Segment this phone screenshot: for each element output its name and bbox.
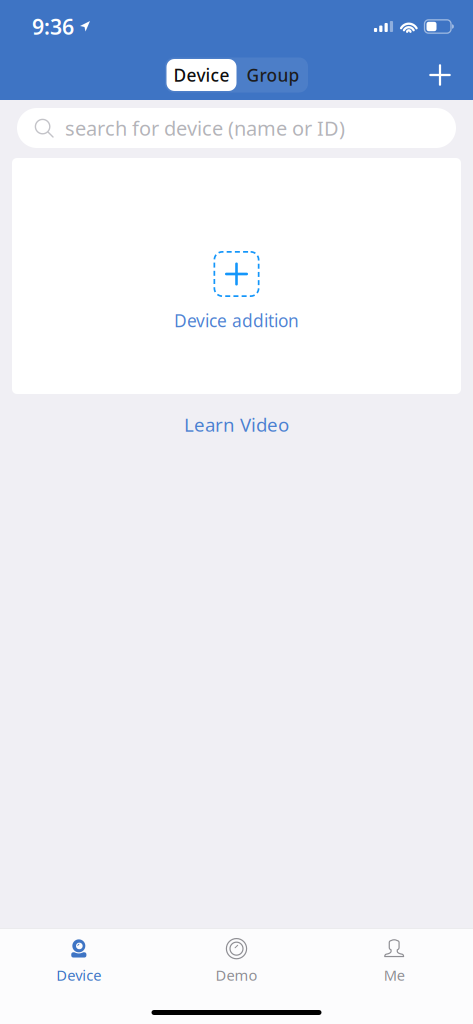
staticText: search for device (name or ID) (65, 115, 345, 141)
staticText: Device addition (174, 309, 299, 332)
staticText: 9:36 (32, 12, 74, 41)
button[interactable]: search for device (name or ID) (17, 108, 456, 148)
button[interactable]: Me (315, 928, 473, 984)
staticText: Device (173, 63, 229, 86)
button[interactable]: Demo (158, 928, 315, 984)
staticText: Learn Video (184, 412, 289, 437)
button[interactable]: Group (238, 57, 308, 92)
button[interactable]: Add device (418, 53, 462, 97)
button[interactable]: Learn Video (164, 406, 309, 443)
staticText: Device (56, 965, 101, 985)
staticText: Group (246, 63, 299, 86)
button[interactable]: Device (0, 928, 158, 984)
button[interactable]: Device (165, 57, 238, 92)
staticText: Me (384, 965, 405, 985)
button[interactable]: Device addition (12, 158, 461, 394)
staticText: Demo (215, 965, 257, 985)
